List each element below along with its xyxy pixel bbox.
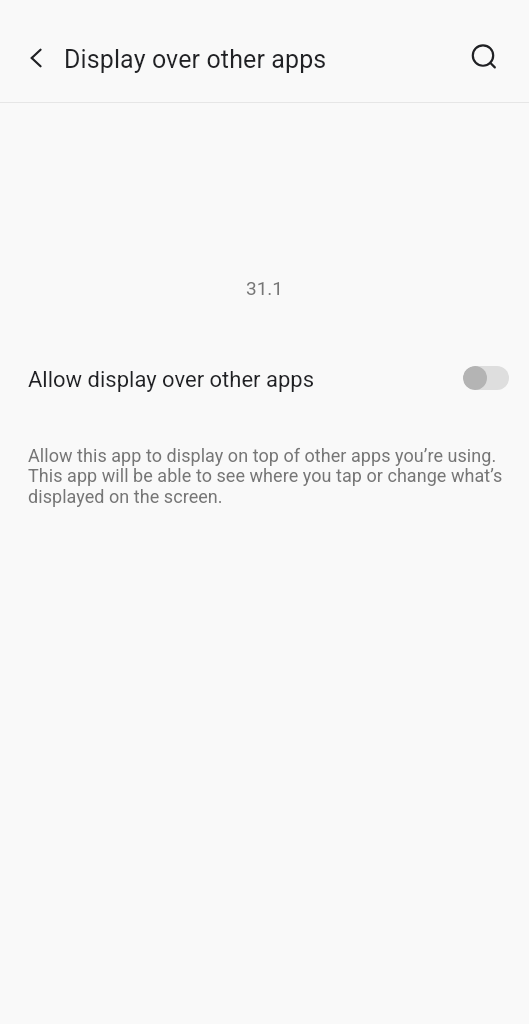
- staticText: Allow display over other apps: [28, 367, 315, 393]
- button[interactable]: Search: [462, 35, 510, 83]
- button[interactable]: Allow display over other apps, off: [463, 366, 509, 390]
- staticText: Display over other apps: [64, 45, 327, 74]
- staticText: 31.1: [0, 277, 529, 299]
- button[interactable]: Navigate up: [12, 34, 60, 82]
- staticText: Allow this app to display on top of othe…: [28, 445, 503, 508]
- button[interactable]: Allow display over other apps: [0, 350, 529, 410]
